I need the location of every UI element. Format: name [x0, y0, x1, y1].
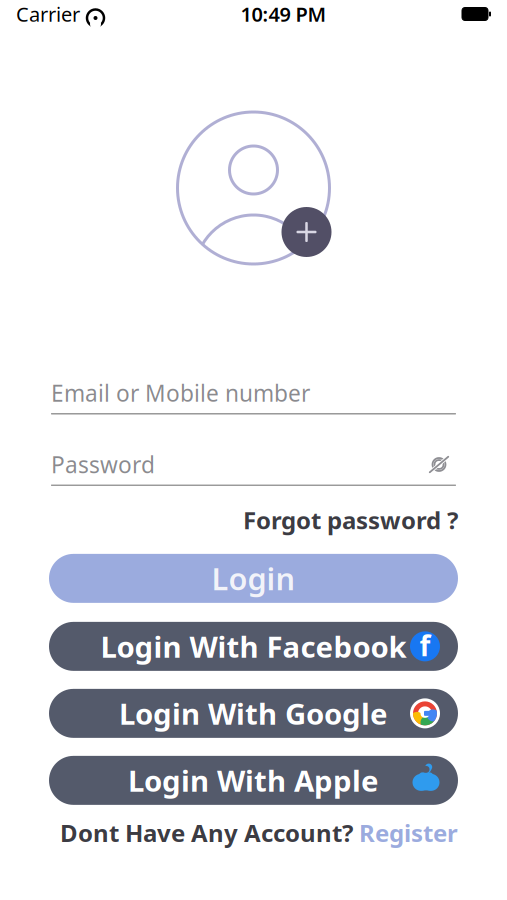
button[interactable]: Dont Have Any Account? — [60, 813, 458, 853]
staticText: Dont Have Any Account? — [60, 817, 353, 849]
button[interactable]: Show password — [422, 449, 456, 479]
button[interactable]: Login With Apple — [49, 756, 458, 805]
staticText: Login — [211, 558, 295, 599]
staticText: Login With Apple — [128, 761, 379, 800]
staticText: Password — [51, 449, 155, 479]
staticText: Register — [359, 817, 458, 849]
staticText: Login With Google — [119, 694, 388, 733]
staticText: f — [419, 627, 430, 664]
staticText: 10:49 PM — [240, 1, 326, 27]
staticText: Forgot password ? — [243, 504, 458, 536]
staticText: Login With Facebook — [100, 627, 406, 666]
button[interactable]: Login With Facebook — [49, 622, 458, 671]
button[interactable]: Login — [49, 554, 458, 603]
button[interactable]: Forgot password ? — [243, 500, 458, 540]
button[interactable]: Login With Google — [49, 689, 458, 738]
staticText: Email or Mobile number — [51, 378, 310, 408]
staticText: Carrier — [16, 1, 80, 27]
